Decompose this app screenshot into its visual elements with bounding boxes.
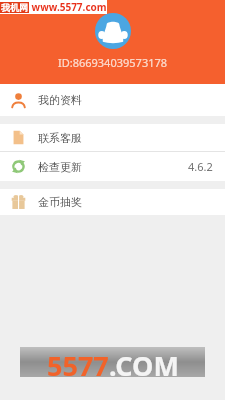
staticText: ID:866934039573178: [0, 55, 225, 70]
staticText: 4.6.2: [188, 159, 213, 174]
staticText: 检查更新: [38, 160, 82, 174]
staticText: 5577: [47, 347, 109, 377]
button[interactable]: 联系客服: [0, 124, 225, 151]
staticText: www.5577.com: [29, 0, 107, 14]
staticText: 我的资料: [38, 93, 82, 107]
button[interactable]: Avatar: [95, 13, 131, 49]
staticText: 金币抽奖: [38, 195, 82, 209]
button[interactable]: 检查更新: [0, 152, 225, 181]
staticText: 联系客服: [38, 131, 82, 145]
button[interactable]: 金币抽奖: [0, 189, 225, 215]
button[interactable]: 我的资料: [0, 84, 225, 116]
staticText: .COM: [109, 347, 179, 377]
staticText: 我机网: [1, 2, 28, 13]
